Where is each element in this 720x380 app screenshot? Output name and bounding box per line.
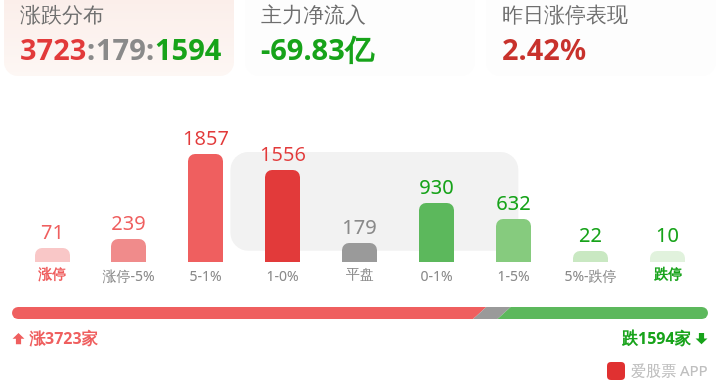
button[interactable]: 1857: [167, 82, 244, 262]
staticText: 涨停: [38, 266, 66, 284]
staticText: 跌停: [654, 266, 682, 284]
staticText: 涨跌分布: [20, 2, 104, 28]
button[interactable]: 涨跌分布: [4, 0, 234, 76]
staticText: 179: [96, 29, 146, 68]
staticText: 239: [111, 209, 146, 236]
staticText: 1857: [183, 124, 229, 151]
button[interactable]: 930: [398, 82, 475, 262]
staticText: 5%-跌停: [564, 266, 617, 285]
staticText: 1-0%: [266, 266, 299, 285]
button[interactable]: 22: [552, 82, 629, 262]
staticText: 5-1%: [189, 266, 222, 285]
staticText: 主力净流入: [261, 2, 366, 28]
staticText: :: [87, 29, 96, 68]
staticText: 0-1%: [420, 266, 453, 285]
staticText: 2.42%: [502, 29, 587, 68]
button[interactable]: 1556: [244, 82, 321, 262]
staticText: 3723: [20, 29, 87, 68]
button[interactable]: 涨3723家: [12, 327, 98, 349]
staticText: 632: [496, 189, 531, 216]
staticText: 10: [656, 221, 679, 248]
staticText: 1594: [155, 29, 222, 68]
button[interactable]: 主力净流入: [245, 0, 475, 76]
button[interactable]: 632: [475, 82, 552, 262]
staticText: 71: [41, 218, 64, 245]
staticText: 930: [419, 173, 454, 200]
button[interactable]: 179: [321, 82, 398, 262]
button[interactable]: 涨跌家数比例: [12, 307, 708, 319]
button[interactable]: 跌1594家: [622, 327, 708, 349]
button[interactable]: 71: [14, 82, 90, 262]
staticText: 昨日涨停表现: [502, 2, 628, 28]
staticText: 爱股票 APP: [631, 360, 708, 380]
staticText: 1-5%: [497, 266, 530, 285]
staticText: 平盘: [346, 266, 374, 284]
staticText: :: [146, 29, 155, 68]
staticText: 22: [579, 221, 602, 248]
staticText: 涨3723家: [29, 327, 98, 349]
button[interactable]: 10: [629, 82, 706, 262]
staticText: 跌1594家: [622, 327, 691, 349]
staticText: 179: [342, 213, 377, 240]
button[interactable]: 239: [90, 82, 167, 262]
staticText: -69.83亿: [261, 29, 374, 69]
staticText: 1556: [260, 140, 306, 167]
button[interactable]: 昨日涨停表现: [486, 0, 716, 76]
staticText: 涨停-5%: [102, 266, 155, 285]
